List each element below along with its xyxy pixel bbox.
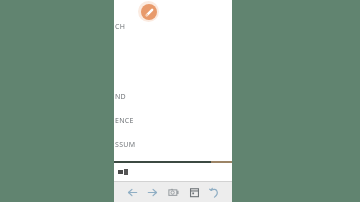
staticText: ENCE [115, 116, 134, 126]
button[interactable]: Forward [143, 183, 161, 201]
button[interactable]: CH [114, 22, 232, 32]
button[interactable]: ENCE [114, 116, 232, 126]
button[interactable]: Camera [164, 183, 182, 201]
button[interactable]: Calendar [185, 183, 203, 201]
button[interactable]: T [114, 164, 232, 174]
staticText: SSUM [115, 140, 136, 150]
button[interactable]: Edit [138, 1, 159, 22]
button[interactable]: SSUM [114, 140, 232, 150]
button[interactable]: ND [114, 92, 232, 102]
button[interactable]: Undo [205, 183, 223, 201]
button[interactable] [114, 163, 232, 181]
button[interactable]: Back [123, 183, 141, 201]
staticText: CH [115, 22, 126, 32]
staticText: ND [115, 92, 127, 102]
staticText: T [115, 164, 120, 174]
